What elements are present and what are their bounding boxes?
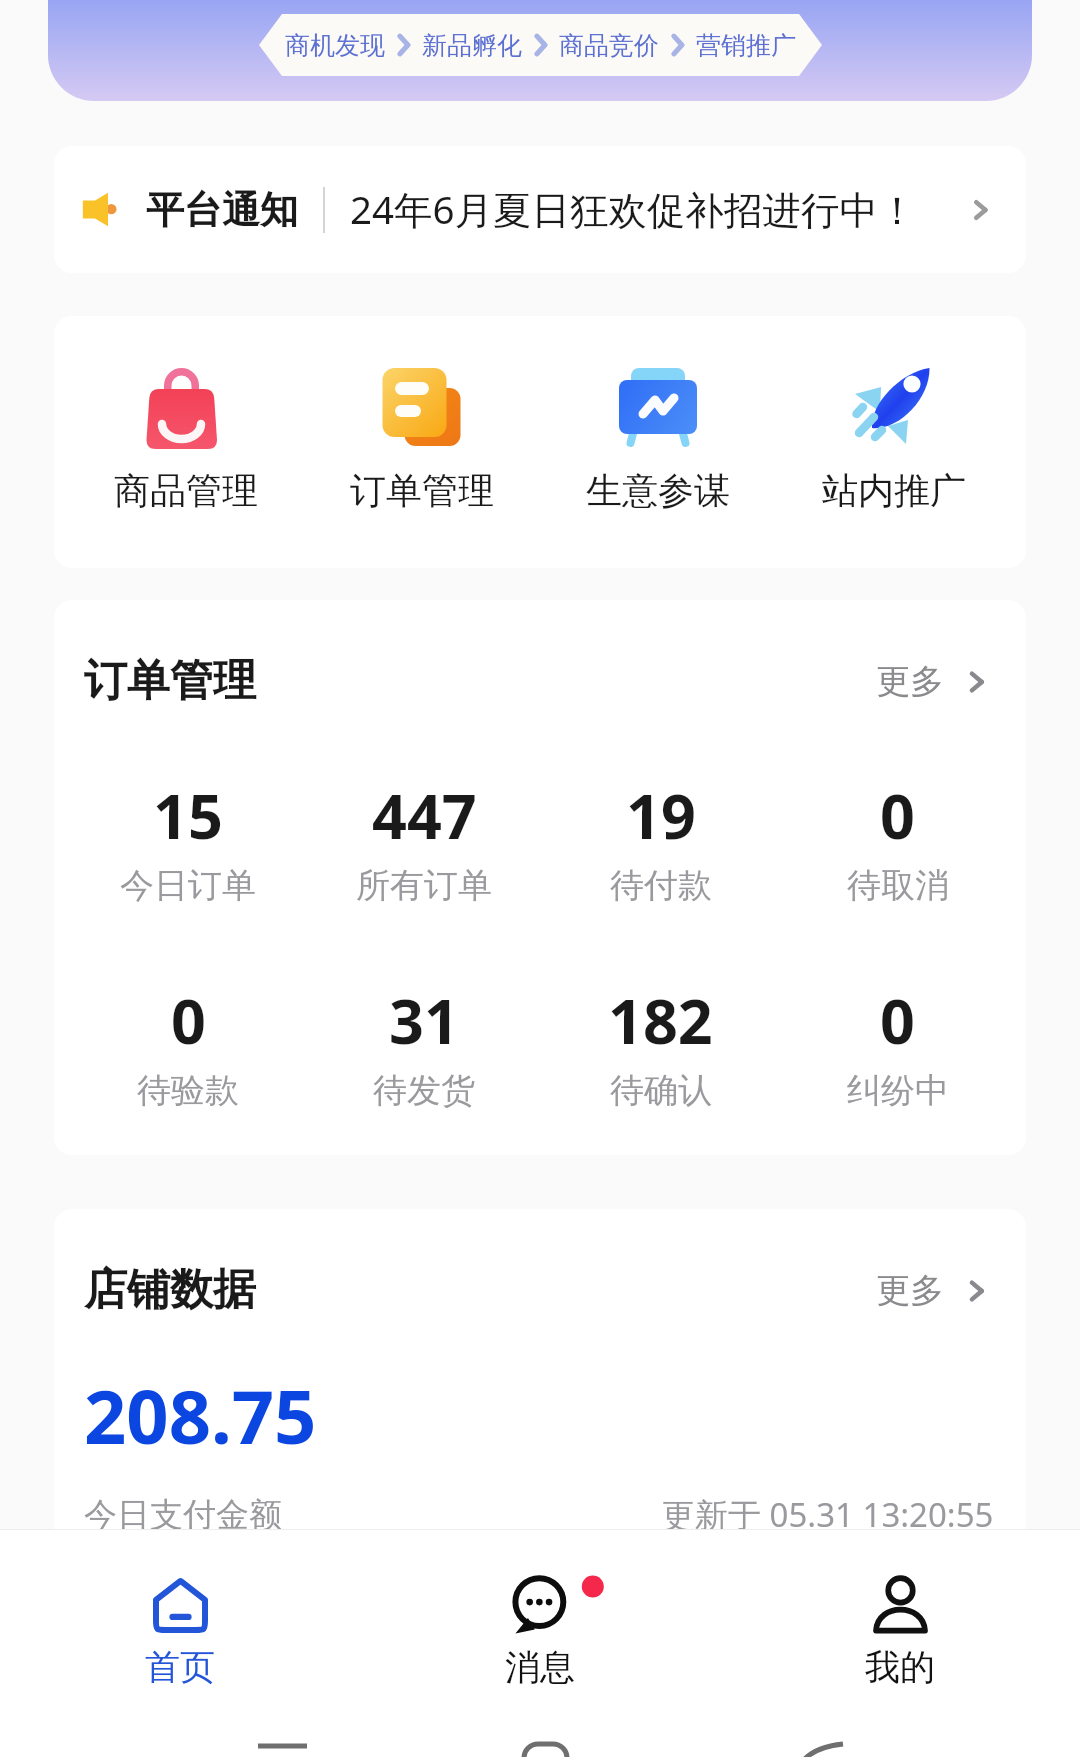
staticText: 0 [880,774,915,857]
staticText: 182 [608,979,713,1062]
staticText: 待取消 [847,864,949,907]
staticText: 更多 [876,1269,944,1312]
button[interactable]: 订单管理 [304,316,540,568]
staticText: 订单管理 [84,654,256,708]
staticText: 商机发现 [285,30,385,61]
staticText: 首页 [145,1645,215,1689]
staticText: 我的 [865,1645,935,1689]
staticText: 待验款 [137,1069,239,1112]
button[interactable]: 0 [779,774,1016,907]
staticText: 15 [153,774,223,857]
staticText: 订单管理 [350,468,494,513]
staticText: 今日支付金额 [84,1494,282,1536]
staticText: 0 [880,979,915,1062]
staticText: 消息 [505,1645,575,1689]
button[interactable]: 182 [542,979,779,1112]
staticText: 今日订单 [120,864,256,907]
button[interactable]: 15 [70,774,306,907]
button[interactable]: 生意参谋 [540,316,776,568]
button[interactable]: 19 [542,774,779,907]
staticText: 24年6月夏日狂欢促补招进行中！ [350,183,917,236]
staticText: 更新于 05.31 13:20:55 [662,1492,994,1537]
staticText: 商品管理 [114,468,258,513]
button[interactable]: 返回 [783,1690,848,1757]
staticText: 营销推广 [696,30,796,61]
staticText: 19 [626,774,696,857]
button[interactable]: 最近任务 [250,1690,315,1757]
staticText: 0 [171,979,206,1062]
button[interactable]: 商品管理 [68,316,304,568]
button[interactable]: 447 [306,774,542,907]
staticText: 生意参谋 [586,468,730,513]
button[interactable]: 商机发现 [259,14,822,76]
staticText: 纠纷中 [847,1069,949,1112]
button[interactable]: 更多 [876,1269,992,1312]
button[interactable]: 更多 [876,660,992,703]
button[interactable]: 我的 [720,1530,1080,1690]
staticText: 新品孵化 [422,30,522,61]
button[interactable]: 首页 [0,1530,360,1690]
staticText: 208.75 [84,1365,317,1466]
staticText: 待付款 [610,864,712,907]
staticText: 店铺数据 [84,1263,256,1317]
button[interactable]: 31 [306,979,542,1112]
button[interactable]: 平台通知 [54,146,1026,273]
button[interactable]: 主页 [513,1690,578,1757]
staticText: 31 [389,979,459,1062]
staticText: 站内推广 [822,468,966,513]
button[interactable]: 消息 [360,1530,720,1690]
staticText: 平台通知 [146,186,298,234]
staticText: 商品竞价 [559,30,659,61]
other: 打开通知 [967,196,995,224]
button[interactable]: 0 [779,979,1016,1112]
staticText: 所有订单 [356,864,492,907]
staticText: 更多 [876,660,944,703]
button[interactable]: 站内推广 [776,316,1012,568]
staticText: 待发货 [373,1069,475,1112]
staticText: 447 [372,774,477,857]
staticText: 待确认 [610,1069,712,1112]
button[interactable]: 0 [70,979,306,1112]
